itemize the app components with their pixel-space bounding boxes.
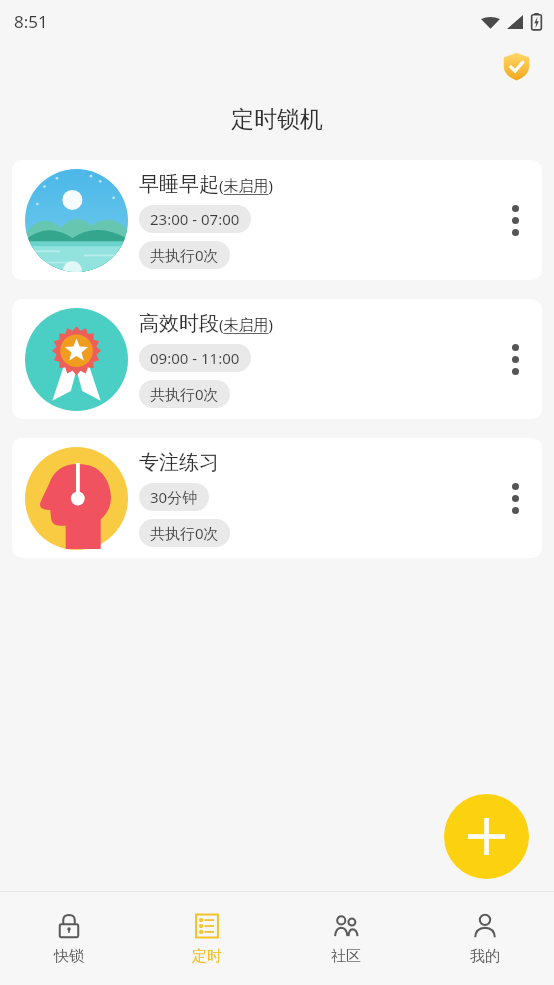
staticText: 共执行0次 xyxy=(150,245,219,265)
staticText: 专注练习 xyxy=(139,450,219,475)
button[interactable]: Protection status xyxy=(498,48,534,84)
button[interactable]: More options xyxy=(488,160,542,280)
staticText: 社区 xyxy=(331,947,361,966)
staticText: 高效时段(未启用) xyxy=(139,311,274,336)
staticText: 快锁 xyxy=(54,947,84,966)
button[interactable]: 社区 xyxy=(276,892,415,985)
button[interactable]: 早睡早起(未启用) xyxy=(12,160,542,280)
staticText: 定时锁机 xyxy=(231,105,323,134)
button[interactable]: 定时 xyxy=(138,892,276,985)
button[interactable]: Add timer xyxy=(444,794,529,879)
button[interactable]: More options xyxy=(488,299,542,419)
button[interactable]: 专注练习 xyxy=(12,438,542,558)
button[interactable]: 快锁 xyxy=(0,892,138,985)
staticText: 8:51 xyxy=(14,10,48,33)
staticText: 我的 xyxy=(470,947,500,966)
staticText: 30分钟 xyxy=(150,487,198,507)
button[interactable]: More options xyxy=(488,438,542,558)
staticText: 定时 xyxy=(192,947,222,966)
staticText: 23:00 - 07:00 xyxy=(150,209,240,229)
button[interactable]: 高效时段(未启用) xyxy=(12,299,542,419)
button[interactable]: 我的 xyxy=(415,892,554,985)
staticText: 共执行0次 xyxy=(150,384,219,404)
staticText: 共执行0次 xyxy=(150,523,219,543)
staticText: 09:00 - 11:00 xyxy=(150,348,240,368)
staticText: 早睡早起(未启用) xyxy=(139,172,274,197)
